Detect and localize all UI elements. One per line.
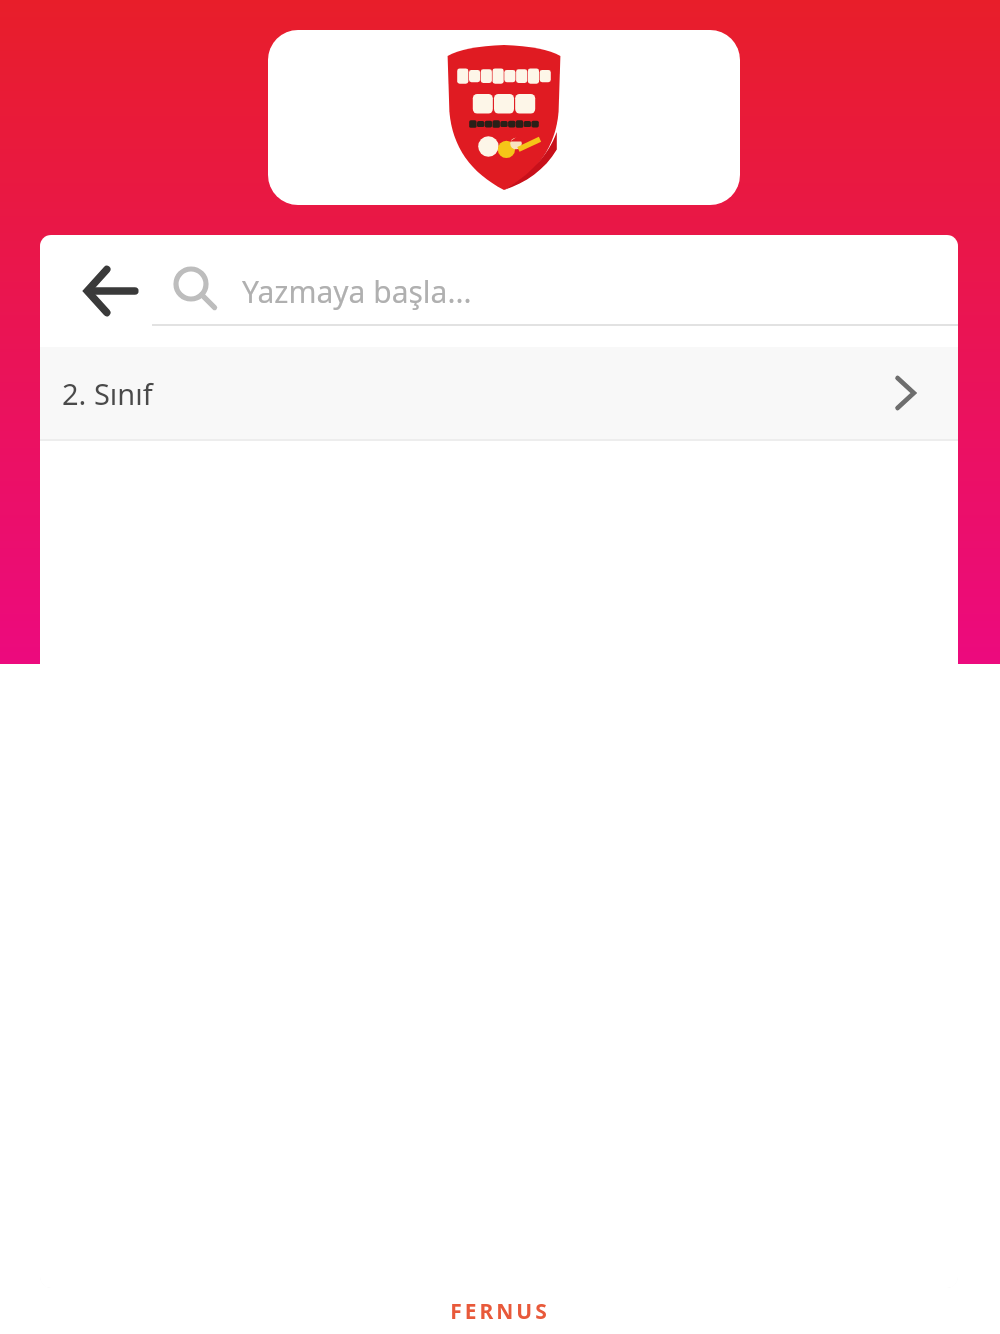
other: Search: [166, 260, 228, 322]
button[interactable]: [268, 30, 740, 205]
staticText: Yazmaya başla...: [242, 271, 472, 312]
staticText: FERNUS: [450, 1297, 550, 1326]
button[interactable]: 2. Sınıf: [40, 347, 958, 439]
staticText: 2. Sınıf: [62, 374, 882, 413]
button[interactable]: Yazmaya başla...: [242, 235, 958, 347]
button[interactable]: Back: [68, 249, 152, 333]
